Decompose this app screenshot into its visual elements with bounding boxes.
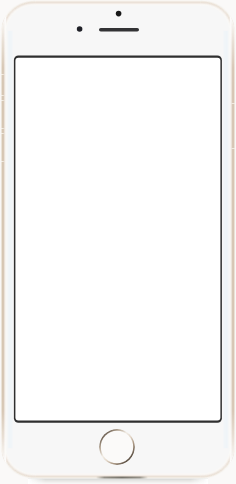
button[interactable]: Power (231, 103, 236, 149)
button[interactable]: Volume up (0, 100, 5, 129)
button[interactable]: Volume down (0, 133, 5, 162)
button[interactable]: Home (99, 429, 135, 465)
button[interactable]: Ring silent switch (0, 74, 5, 96)
